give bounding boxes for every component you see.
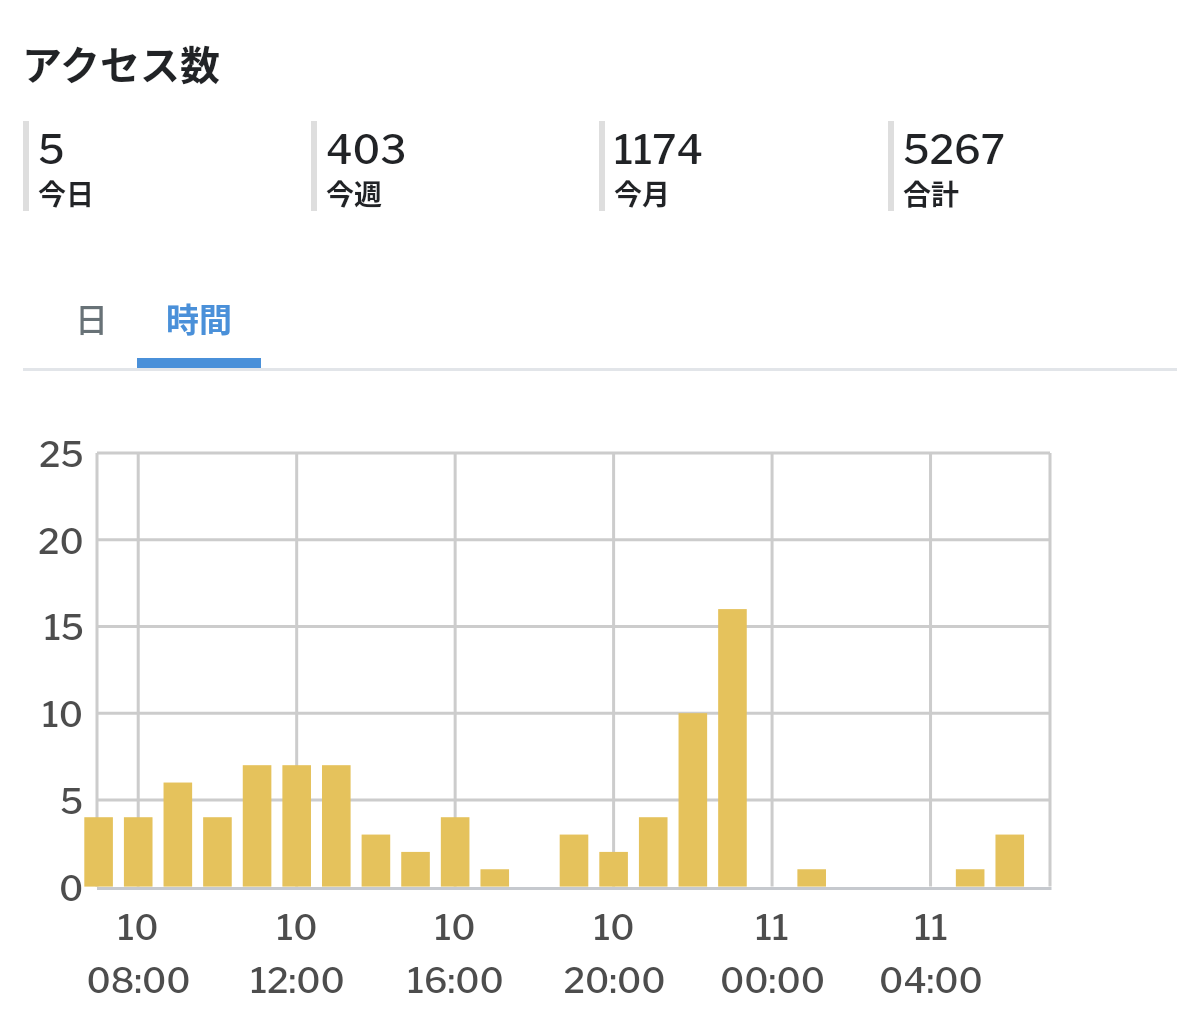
button[interactable]: 時間 [137,277,261,368]
button[interactable]: 5267 [888,121,1177,211]
staticText: 11 [755,906,789,948]
button[interactable]: 日 [46,277,137,368]
button[interactable]: 403 [311,121,599,211]
staticText: 今月 [614,173,671,211]
staticText: 04:00 [879,959,983,1001]
staticText: 1174 [614,125,703,173]
button[interactable]: 5 [23,121,311,211]
staticText: 5 [38,125,65,173]
staticText: 今週 [326,173,383,211]
staticText: 403 [326,125,407,173]
staticText: 5267 [903,125,1005,173]
staticText: 00:00 [720,959,825,1001]
staticText: 08:00 [86,959,191,1001]
staticText: 20 [38,520,84,562]
staticText: 今日 [38,173,95,211]
staticText: 合計 [903,173,960,211]
staticText: 15 [44,606,84,648]
staticText: アクセス数 [22,34,220,92]
staticText: 10 [117,906,159,948]
staticText: 12:00 [250,959,345,1001]
staticText: 10 [593,906,635,948]
staticText: 16:00 [407,959,504,1001]
staticText: 5 [60,780,84,822]
staticText: 0 [59,867,84,909]
staticText: 11 [914,906,948,948]
staticText: 10 [42,693,84,735]
staticText: 20:00 [563,959,666,1001]
staticText: 25 [39,433,84,475]
staticText: 10 [434,906,476,948]
staticText: 10 [276,906,318,948]
staticText: 時間 [166,294,232,342]
button[interactable]: 1174 [599,121,888,211]
other: Hourly access count bar chart [0,0,1200,1016]
staticText: 日 [75,294,108,342]
